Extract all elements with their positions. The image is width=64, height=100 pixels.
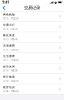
staticText: 01-12 -¥200.00	[3, 48, 18, 51]
staticText: 充值缴费	[3, 44, 15, 47]
staticText: 交易记录	[24, 5, 40, 11]
staticText: 网络购物	[3, 13, 15, 16]
staticText: 01-15 -¥128.50	[3, 17, 18, 20]
staticText: 9:41	[2, 0, 9, 4]
button[interactable]: 餐饮美食	[0, 32, 64, 43]
staticText: 生活缴费	[3, 54, 15, 58]
button[interactable]: 网络购物	[0, 11, 64, 22]
button[interactable]: Back	[0, 5, 8, 11]
staticText: 01-08 -¥980.00	[3, 89, 18, 93]
staticText: 01-11 -¥158.20	[3, 58, 18, 62]
staticText: 01-10 -¥68.00	[3, 69, 17, 72]
staticText: 01-14 -¥32.00	[3, 27, 17, 31]
staticText: 01-13 -¥86.00	[3, 37, 17, 41]
button[interactable]: 医疗健康	[0, 74, 64, 84]
staticText: 01-09 -¥245.00	[3, 79, 18, 83]
staticText: 教育培训	[3, 86, 15, 89]
staticText: 医疗健康	[3, 75, 15, 79]
button[interactable]: 充值缴费	[0, 43, 64, 53]
staticText: 娱乐休闲	[3, 65, 15, 68]
button[interactable]: 交通出行	[0, 22, 64, 32]
staticText: 餐饮美食	[3, 34, 15, 37]
staticText: 交通出行	[3, 23, 15, 27]
button[interactable]: 娱乐休闲	[0, 63, 64, 74]
button[interactable]: 生活缴费	[0, 53, 64, 63]
button[interactable]: 教育培训	[0, 84, 64, 95]
